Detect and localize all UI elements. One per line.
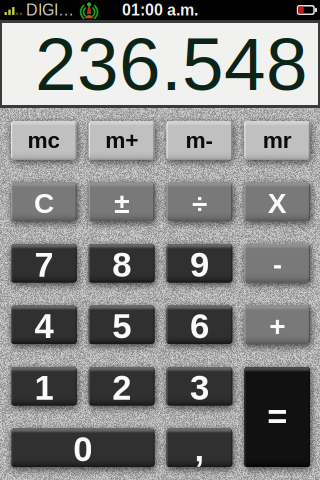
staticText: 0	[73, 430, 92, 469]
staticText: 7	[34, 245, 53, 284]
staticText: ÷	[192, 188, 207, 219]
staticText: DIGI…	[26, 1, 74, 19]
button[interactable]: 2	[89, 367, 155, 405]
button[interactable]: 8	[89, 244, 155, 282]
staticText: m+	[105, 128, 138, 153]
staticText: 5	[112, 307, 131, 346]
button[interactable]: -	[244, 244, 310, 282]
button[interactable]: m+	[89, 121, 155, 159]
button[interactable]: =	[244, 367, 310, 467]
button[interactable]: mc	[11, 121, 77, 159]
staticText: 9	[190, 245, 209, 284]
button[interactable]: 6	[166, 305, 232, 344]
button[interactable]: 9	[166, 244, 232, 282]
staticText: 2	[112, 368, 131, 407]
button[interactable]: 5	[89, 305, 155, 344]
button[interactable]: 3	[166, 367, 232, 405]
button[interactable]: +	[244, 305, 310, 344]
staticText: +	[269, 311, 285, 342]
staticText: ,	[194, 430, 204, 469]
staticText: C	[34, 188, 54, 219]
button[interactable]: 0	[11, 428, 154, 467]
staticText: -	[273, 249, 282, 280]
staticText: 1	[34, 368, 53, 407]
staticText: 01:00 a.m.	[122, 1, 198, 19]
staticText: 8	[112, 245, 131, 284]
staticText: 236.548	[35, 22, 308, 106]
staticText: ±	[114, 188, 129, 219]
staticText: X	[268, 188, 287, 219]
button[interactable]: ,	[166, 428, 232, 467]
button[interactable]: 7	[11, 244, 77, 282]
button[interactable]: ±	[89, 182, 155, 221]
button[interactable]: X	[244, 182, 310, 221]
button[interactable]: 1	[11, 367, 77, 405]
staticText: mc	[27, 128, 60, 153]
staticText: 6	[190, 307, 209, 346]
button[interactable]: ÷	[166, 182, 232, 221]
button[interactable]: C	[11, 182, 77, 221]
button[interactable]: mr	[244, 121, 310, 159]
staticText: 3	[190, 368, 209, 407]
staticText: mr	[263, 128, 292, 153]
staticText: =	[267, 398, 287, 436]
staticText: 4	[34, 307, 53, 346]
button[interactable]: m-	[166, 121, 232, 159]
button[interactable]: 4	[11, 305, 77, 344]
staticText: m-	[185, 128, 213, 153]
